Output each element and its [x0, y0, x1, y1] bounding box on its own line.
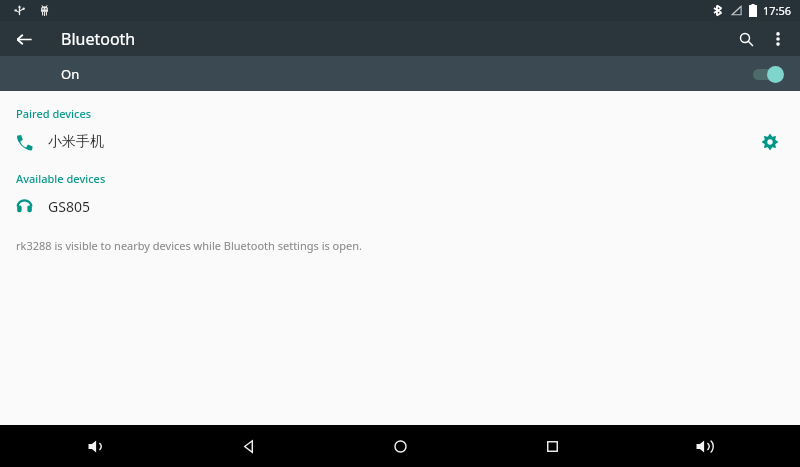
- button[interactable]: Device settings: [752, 124, 788, 160]
- staticText: Bluetooth: [61, 28, 136, 50]
- staticText: Paired devices: [16, 106, 92, 121]
- button[interactable]: Recent apps: [476, 425, 628, 467]
- staticText: rk3288 is visible to nearby devices whil…: [16, 238, 362, 253]
- button[interactable]: Home: [324, 425, 476, 467]
- button[interactable]: Search: [730, 23, 762, 55]
- button[interactable]: On: [0, 56, 800, 91]
- staticText: GS805: [48, 197, 90, 216]
- staticText: Available devices: [16, 171, 106, 186]
- button[interactable]: 小米手机: [0, 121, 800, 163]
- button[interactable]: Back: [8, 23, 40, 55]
- button[interactable]: More options: [762, 23, 794, 55]
- staticText: On: [61, 65, 80, 83]
- staticText: 小米手机: [48, 133, 104, 151]
- button[interactable]: Back: [172, 425, 324, 467]
- button[interactable]: Volume down: [20, 425, 172, 467]
- button[interactable]: GS805: [0, 186, 800, 226]
- button[interactable]: Volume up: [628, 425, 780, 467]
- staticText: 17:56: [763, 3, 792, 18]
